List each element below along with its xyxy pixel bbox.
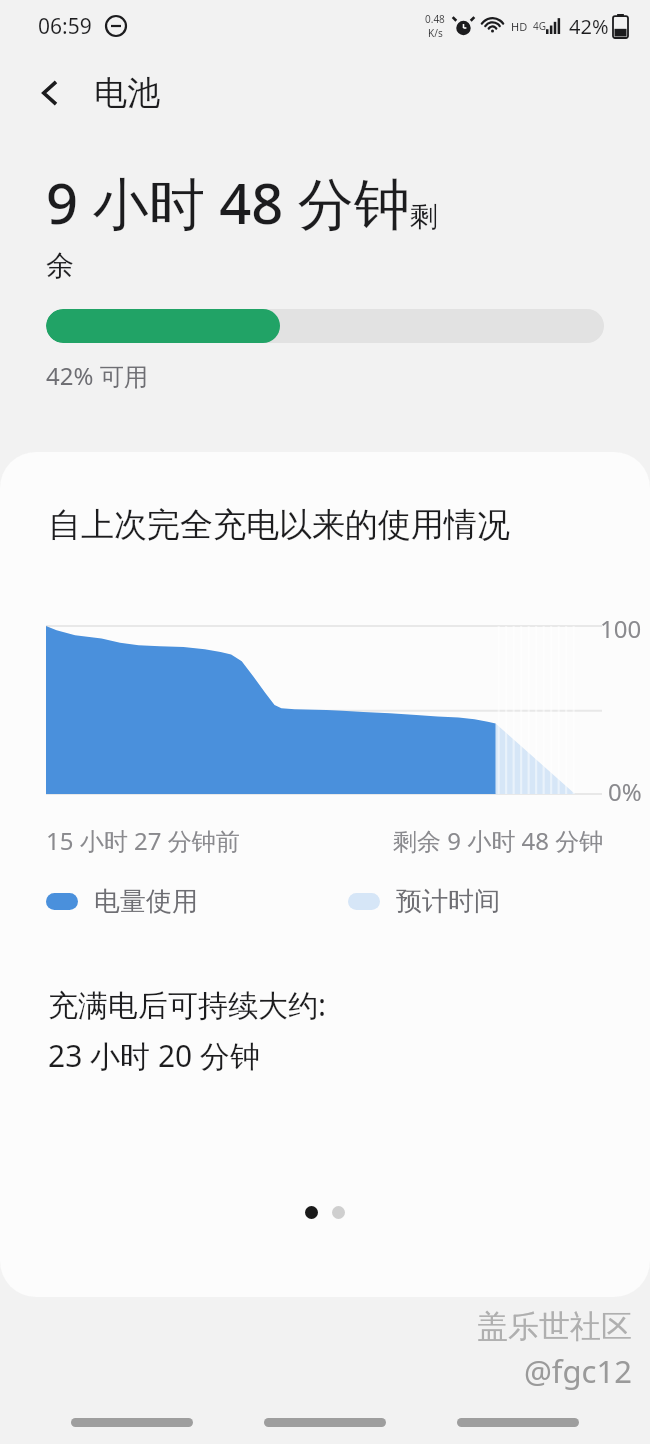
button[interactable]: Home <box>264 1418 386 1427</box>
staticText: 23 小时 20 分钟 <box>48 1035 261 1076</box>
staticText: @fgc12 <box>524 1350 632 1392</box>
staticText: 预计时间 <box>396 885 500 918</box>
button[interactable]: Back <box>457 1418 579 1427</box>
staticText: 电量使用 <box>94 885 198 918</box>
staticText: 剩 <box>410 199 438 234</box>
staticText: 余 <box>46 248 74 283</box>
staticText: 剩余 9 小时 48 分钟 <box>393 824 604 857</box>
staticText: 100 <box>600 612 642 645</box>
staticText: 9 小时 48 分钟 <box>46 164 410 240</box>
staticText: 42% 可用 <box>46 359 148 392</box>
button[interactable]: Back <box>22 65 78 121</box>
staticText: 15 小时 27 分钟前 <box>46 824 240 857</box>
staticText: 充满电后可持续大约: <box>48 984 327 1025</box>
staticText: 0.48 <box>425 12 445 26</box>
button[interactable]: Recents <box>71 1418 193 1427</box>
button[interactable]: 自上次完全充电以来的使用情况 <box>0 452 650 1297</box>
staticText: 42% <box>569 13 609 40</box>
staticText: 06:59 <box>38 12 92 41</box>
staticText: K/s <box>428 26 443 40</box>
staticText: 电池 <box>94 72 160 114</box>
staticText: 4G <box>533 19 546 33</box>
staticText: 自上次完全充电以来的使用情况 <box>48 504 510 546</box>
staticText: HD <box>511 19 528 34</box>
staticText: 盖乐世社区 <box>477 1307 632 1346</box>
staticText: 0% <box>608 775 642 808</box>
